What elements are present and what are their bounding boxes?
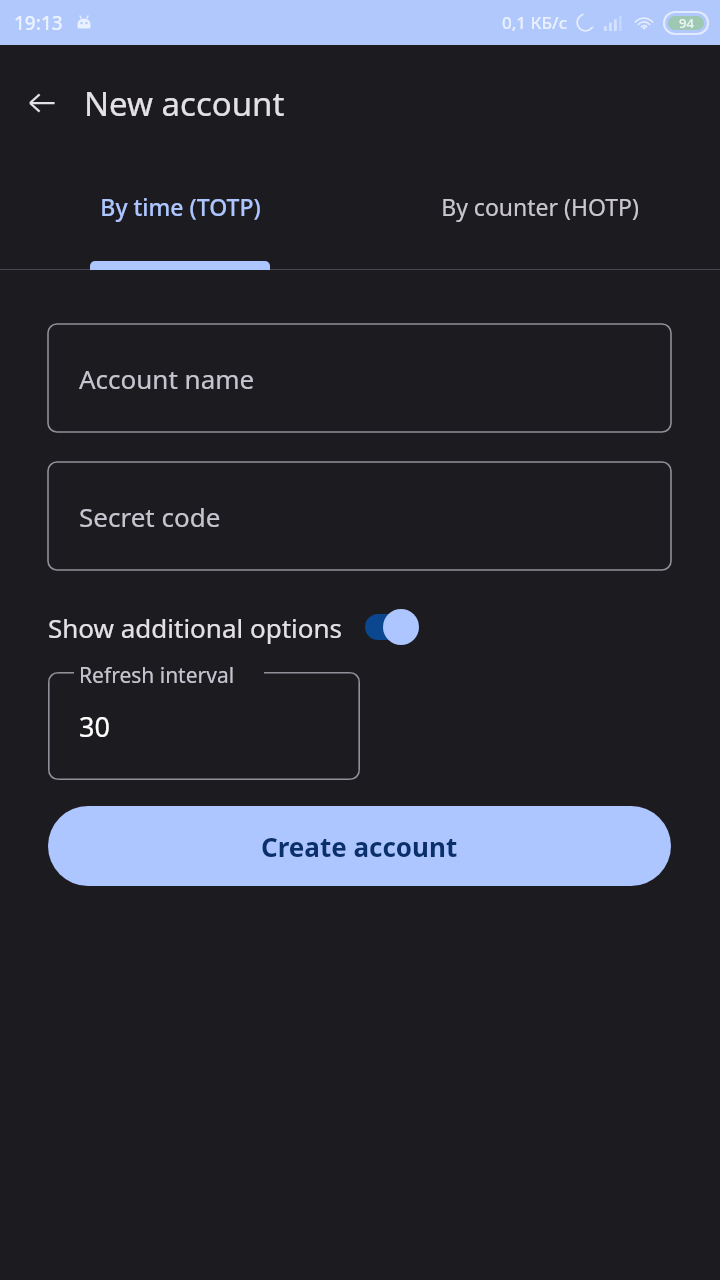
staticText: 30	[79, 708, 110, 745]
staticText: Show additional options	[48, 610, 343, 645]
staticText: 0,1 КБ/с	[502, 11, 568, 34]
staticText: By time (TOTP)	[100, 191, 261, 222]
button[interactable]: Secret code	[48, 462, 671, 570]
staticText: New account	[84, 81, 285, 126]
button[interactable]: By counter (HOTP)	[360, 160, 720, 270]
staticText: Create account	[261, 829, 458, 864]
button[interactable]: Refresh interval	[48, 672, 360, 780]
button[interactable]: Back	[14, 75, 70, 131]
button[interactable]: By time (TOTP)	[0, 160, 360, 270]
staticText: 19:13	[14, 10, 63, 36]
button[interactable]: Account name	[48, 324, 671, 432]
staticText: Account name	[79, 361, 255, 396]
button[interactable]: Show additional options	[48, 596, 671, 658]
staticText: Secret code	[79, 499, 221, 534]
staticText: 94	[679, 14, 694, 32]
staticText: By counter (HOTP)	[441, 191, 639, 222]
button[interactable]: Create account	[48, 806, 671, 886]
staticText: Refresh interval	[79, 661, 235, 690]
